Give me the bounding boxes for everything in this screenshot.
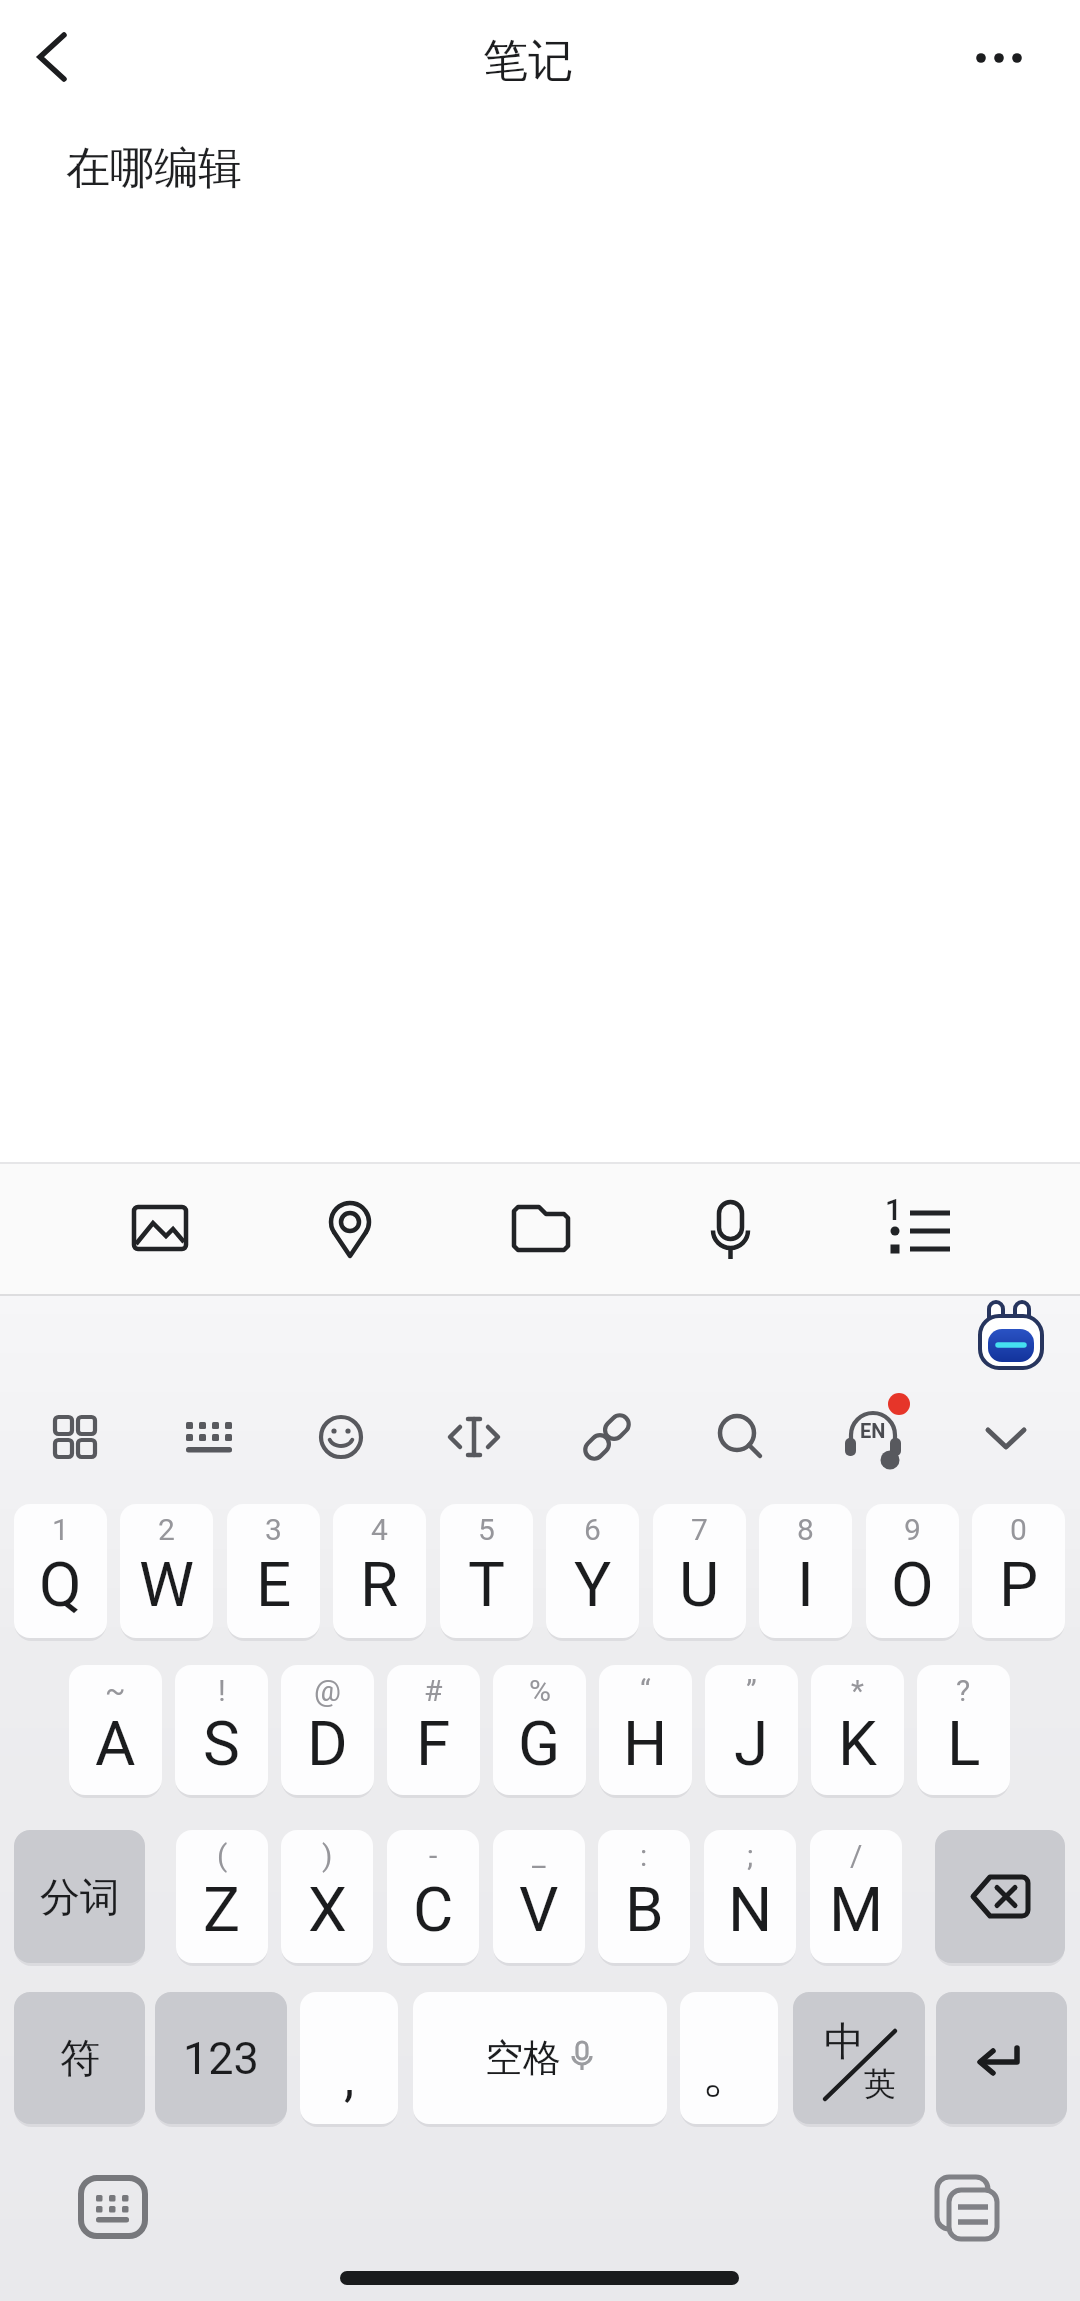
- button[interactable]: *: [811, 1665, 904, 1795]
- button[interactable]: 4: [333, 1504, 426, 1638]
- button[interactable]: /: [810, 1830, 902, 1963]
- staticText: 0: [1010, 1512, 1027, 1547]
- button[interactable]: _: [493, 1830, 585, 1963]
- button[interactable]: [936, 1992, 1067, 2124]
- button[interactable]: 8: [759, 1504, 852, 1638]
- staticText: X: [308, 1873, 347, 1946]
- staticText: 笔记: [483, 33, 573, 90]
- staticText: @: [314, 1673, 341, 1708]
- staticText: A: [95, 1707, 136, 1780]
- button[interactable]: [299, 1180, 399, 1276]
- staticText: ,: [344, 2048, 355, 2109]
- button[interactable]: :: [598, 1830, 690, 1963]
- button[interactable]: ”: [705, 1665, 798, 1795]
- staticText: 符: [60, 2033, 100, 2083]
- staticText: R: [360, 1548, 399, 1621]
- staticText: ;: [747, 1838, 754, 1873]
- staticText: T: [468, 1548, 505, 1621]
- staticText: EN: [860, 1419, 886, 1442]
- staticText: 4: [371, 1512, 388, 1547]
- button[interactable]: 空格: [413, 1992, 667, 2124]
- button[interactable]: ): [281, 1830, 373, 1963]
- staticText: _: [532, 1838, 546, 1873]
- staticText: J: [734, 1707, 769, 1780]
- button[interactable]: ,: [300, 1992, 398, 2124]
- button[interactable]: 123: [155, 1992, 287, 2124]
- button[interactable]: 5: [440, 1504, 533, 1638]
- staticText: B: [625, 1873, 664, 1946]
- staticText: D: [307, 1707, 348, 1780]
- button[interactable]: [168, 1397, 248, 1477]
- staticText: 1: [52, 1512, 69, 1547]
- button[interactable]: 分词: [14, 1830, 145, 1963]
- button[interactable]: “: [599, 1665, 692, 1795]
- button[interactable]: [966, 1397, 1046, 1477]
- button[interactable]: [967, 38, 1043, 78]
- staticText: 空格: [485, 2034, 561, 2082]
- button[interactable]: 7: [653, 1504, 746, 1638]
- button[interactable]: EN: [833, 1390, 923, 1484]
- staticText: P: [999, 1548, 1039, 1621]
- button[interactable]: 。: [680, 1992, 778, 2124]
- button[interactable]: ~: [69, 1665, 162, 1795]
- button[interactable]: [65, 2162, 161, 2254]
- staticText: U: [679, 1548, 720, 1621]
- staticText: 7: [691, 1512, 708, 1547]
- button[interactable]: [112, 1180, 212, 1276]
- button[interactable]: 6: [546, 1504, 639, 1638]
- staticText: Y: [574, 1548, 612, 1621]
- button[interactable]: [567, 1397, 647, 1477]
- staticText: C: [413, 1873, 454, 1946]
- button[interactable]: -: [387, 1830, 479, 1963]
- button[interactable]: [700, 1397, 780, 1477]
- staticText: M: [829, 1873, 884, 1946]
- staticText: /: [850, 1838, 863, 1873]
- staticText: I: [797, 1548, 814, 1621]
- button[interactable]: 中: [793, 1992, 925, 2124]
- button[interactable]: !: [175, 1665, 268, 1795]
- button[interactable]: [680, 1180, 780, 1276]
- staticText: 英: [864, 2064, 896, 2104]
- staticText: W: [139, 1548, 195, 1621]
- button[interactable]: [35, 1397, 115, 1477]
- button[interactable]: 9: [866, 1504, 959, 1638]
- staticText: !: [218, 1673, 226, 1708]
- button[interactable]: 符: [14, 1992, 145, 2124]
- button[interactable]: (: [176, 1830, 268, 1963]
- button[interactable]: #: [387, 1665, 480, 1795]
- staticText: H: [623, 1707, 668, 1780]
- staticText: 8: [797, 1512, 814, 1547]
- staticText: ?: [956, 1673, 971, 1708]
- button[interactable]: [920, 2162, 1016, 2254]
- button[interactable]: 1: [14, 1504, 107, 1638]
- button[interactable]: [301, 1397, 381, 1477]
- staticText: “: [640, 1673, 651, 1708]
- staticText: V: [519, 1873, 559, 1946]
- button[interactable]: ;: [704, 1830, 796, 1963]
- staticText: 2: [158, 1512, 175, 1547]
- button[interactable]: ?: [917, 1665, 1010, 1795]
- button[interactable]: @: [281, 1665, 374, 1795]
- staticText: L: [947, 1707, 981, 1780]
- staticText: 3: [265, 1512, 282, 1547]
- staticText: 中: [824, 2016, 864, 2066]
- button[interactable]: [490, 1180, 590, 1276]
- button[interactable]: 2: [120, 1504, 213, 1638]
- button[interactable]: %: [493, 1665, 586, 1795]
- staticText: Z: [203, 1873, 241, 1946]
- staticText: N: [728, 1873, 773, 1946]
- staticText: 分词: [40, 1872, 120, 1922]
- staticText: 5: [478, 1512, 495, 1547]
- button[interactable]: 1: [870, 1180, 970, 1276]
- staticText: F: [416, 1707, 451, 1780]
- button[interactable]: [976, 1298, 1048, 1372]
- staticText: 。: [701, 2037, 757, 2108]
- button[interactable]: [30, 30, 78, 84]
- button[interactable]: [935, 1830, 1065, 1963]
- staticText: E: [256, 1548, 292, 1621]
- button[interactable]: [434, 1397, 514, 1477]
- staticText: K: [838, 1707, 877, 1780]
- staticText: 在哪编辑: [66, 141, 242, 196]
- button[interactable]: 0: [972, 1504, 1065, 1638]
- button[interactable]: 3: [227, 1504, 320, 1638]
